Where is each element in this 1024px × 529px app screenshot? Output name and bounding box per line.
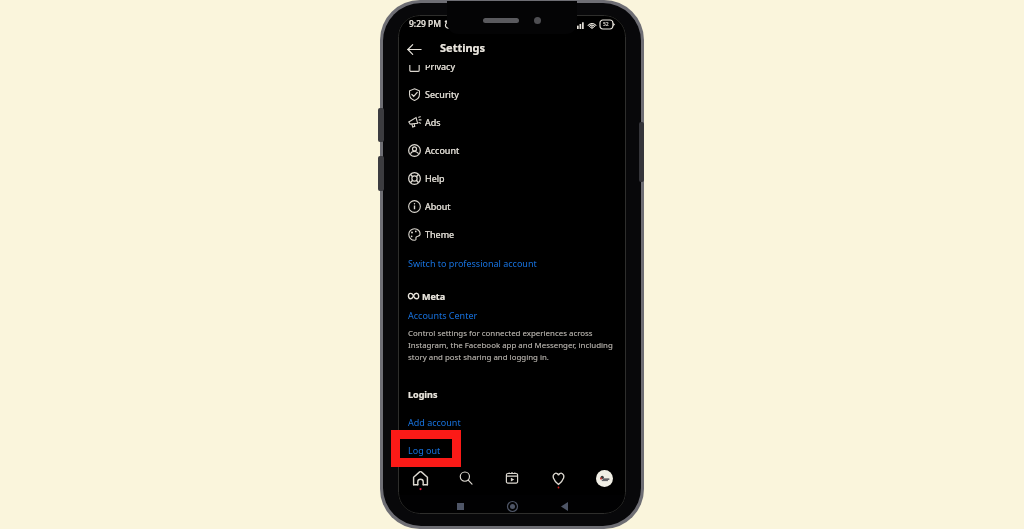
- staticText: Security: [425, 88, 459, 100]
- button[interactable]: Switch to professional account: [398, 256, 626, 270]
- staticText: 52: [603, 21, 609, 28]
- staticText: Help: [425, 172, 445, 184]
- staticText: Settings: [440, 40, 486, 55]
- staticText: Theme: [425, 228, 455, 240]
- staticText: Log out: [408, 444, 441, 456]
- button[interactable]: Recents: [449, 495, 471, 514]
- staticText: Meta: [422, 290, 446, 302]
- button[interactable]: Profile: [591, 465, 617, 491]
- button[interactable]: Theme: [398, 220, 626, 248]
- button[interactable]: Back: [403, 38, 425, 60]
- staticText: Control settings for connected experienc…: [408, 328, 613, 363]
- button[interactable]: Likes: [545, 465, 571, 491]
- button[interactable]: Search: [453, 465, 479, 491]
- button[interactable]: About: [398, 192, 626, 220]
- button[interactable]: Home: [501, 495, 523, 514]
- button[interactable]: Ads: [398, 108, 626, 136]
- staticText: Add account: [408, 416, 461, 428]
- button[interactable]: Back: [553, 495, 575, 514]
- button[interactable]: Help: [398, 164, 626, 192]
- button[interactable]: Home: [407, 465, 433, 491]
- button[interactable]: Security: [398, 80, 626, 108]
- staticText: About: [425, 200, 451, 212]
- staticText: Switch to professional account: [408, 257, 537, 269]
- staticText: 9:29 PM: [409, 18, 442, 30]
- staticText: Accounts Center: [408, 309, 478, 321]
- button[interactable]: Add account: [398, 415, 626, 429]
- button[interactable]: Privacy: [398, 65, 626, 80]
- button[interactable]: Log out: [398, 443, 626, 457]
- staticText: Account: [425, 144, 460, 156]
- button[interactable]: Accounts Center: [398, 308, 626, 322]
- button[interactable]: Reels: [499, 465, 525, 491]
- staticText: Ads: [425, 116, 441, 128]
- staticText: Privacy: [425, 65, 456, 72]
- button[interactable]: Account: [398, 136, 626, 164]
- staticText: Logins: [408, 388, 438, 400]
